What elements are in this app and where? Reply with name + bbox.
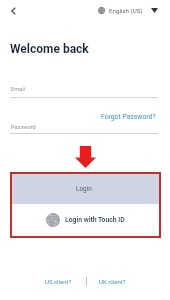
button[interactable]: Login [12, 174, 159, 204]
button[interactable]: Forgot Password? [101, 113, 156, 121]
button[interactable]: Change language [98, 2, 158, 18]
staticText: US client? [45, 278, 72, 285]
staticText: Login with Touch ID [65, 216, 125, 224]
button[interactable]: UK client? [99, 278, 126, 285]
staticText: Email [11, 86, 25, 93]
button[interactable]: US client? [45, 278, 72, 285]
staticText: Login [76, 185, 92, 193]
staticText: UK client? [99, 278, 126, 285]
staticText: Welcome back [10, 42, 89, 56]
button[interactable]: Back [5, 2, 22, 19]
staticText: English (US) [109, 7, 143, 14]
staticText: Forgot Password? [101, 113, 156, 121]
staticText: Password [11, 124, 36, 131]
button[interactable]: Login with Touch ID [12, 204, 159, 236]
